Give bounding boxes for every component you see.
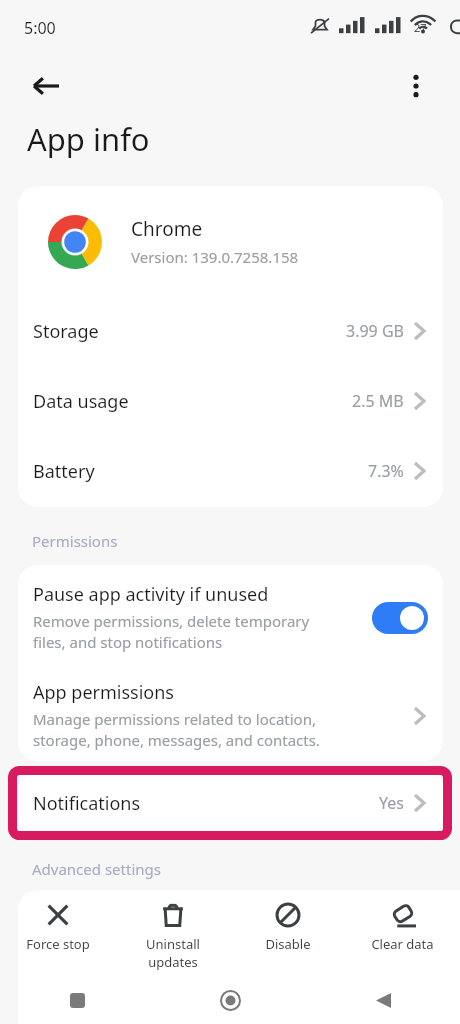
button[interactable]: Uninstall updates — [115, 890, 230, 971]
staticText: Chrome — [131, 216, 203, 242]
staticText: Advanced settings — [32, 859, 161, 879]
staticText: Yes — [379, 792, 404, 814]
staticText: 27 — [414, 20, 427, 35]
button[interactable]: Battery — [18, 436, 443, 506]
button[interactable]: Data usage — [18, 366, 443, 436]
staticText: Permissions — [32, 531, 118, 551]
button[interactable]: Home — [154, 990, 307, 1011]
staticText: Battery — [33, 459, 368, 484]
button[interactable]: Storage — [18, 296, 443, 366]
button[interactable]: Back — [307, 993, 460, 1008]
staticText: 5:00 — [24, 17, 56, 39]
staticText: Remove permissions, delete temporary fil… — [33, 611, 310, 653]
staticText: 7.3% — [368, 460, 404, 482]
button[interactable]: App permissions — [18, 670, 443, 761]
staticText: Version: 139.0.7258.158 — [131, 247, 299, 267]
button[interactable]: Disable — [230, 890, 345, 953]
button[interactable]: Recents — [0, 993, 154, 1008]
staticText: Storage — [33, 319, 346, 344]
button[interactable]: Pause app activity if unused — [18, 565, 443, 670]
staticText: Manage permissions related to location, … — [33, 709, 320, 751]
button[interactable]: Back — [18, 58, 74, 114]
staticText: Uninstall updates — [146, 935, 200, 971]
button[interactable]: Notifications — [18, 772, 443, 834]
staticText: Notifications — [33, 791, 141, 816]
staticText: Disable — [265, 935, 311, 953]
staticText: 2.5 MB — [352, 390, 404, 412]
staticText: Pause app activity if unused — [33, 582, 269, 607]
staticText: 3.99 GB — [346, 320, 404, 342]
button[interactable]: Chrome — [18, 186, 443, 296]
button[interactable]: Clear data — [345, 890, 460, 953]
staticText: Clear data — [371, 935, 434, 953]
staticText: App info — [27, 118, 150, 160]
button[interactable]: More options — [388, 58, 444, 114]
staticText: Data usage — [33, 389, 352, 414]
staticText: App permissions — [33, 680, 174, 705]
button[interactable]: Force stop — [0, 890, 115, 953]
staticText: Force stop — [26, 935, 90, 953]
